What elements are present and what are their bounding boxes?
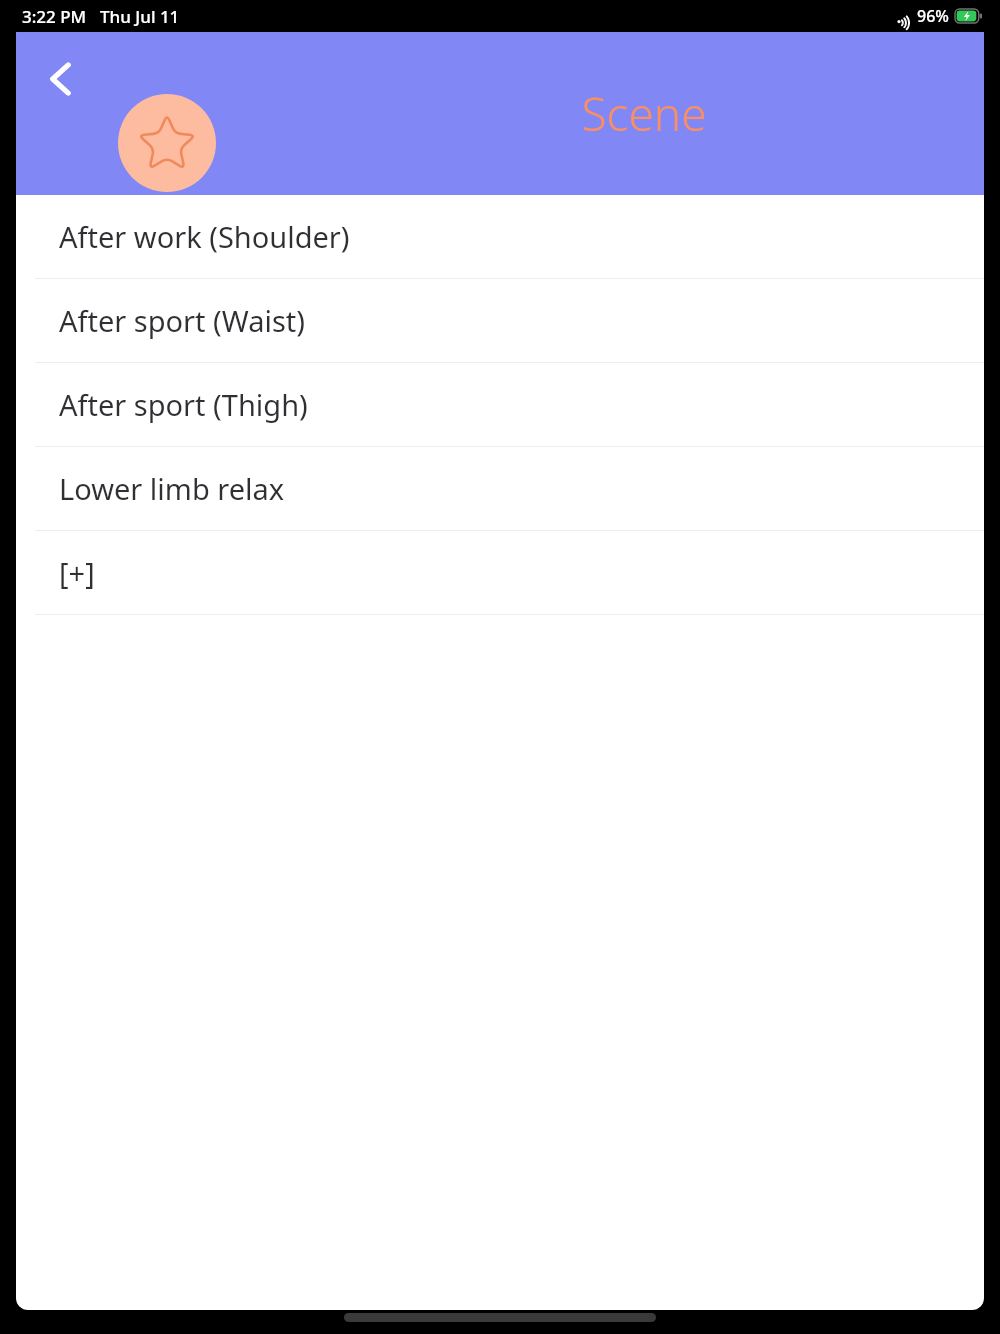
- button[interactable]: Scene icon: [118, 94, 216, 192]
- button[interactable]: After work (Shoulder): [16, 195, 984, 278]
- staticText: After sport (Thigh): [59, 385, 308, 424]
- staticText: After sport (Waist): [59, 301, 306, 340]
- button[interactable]: [+]: [16, 531, 984, 614]
- staticText: 96%: [917, 5, 949, 27]
- button[interactable]: After sport (Thigh): [16, 363, 984, 446]
- button[interactable]: Back: [36, 54, 86, 104]
- staticText: 3:22 PM: [22, 5, 87, 28]
- staticText: After work (Shoulder): [59, 217, 350, 256]
- staticText: [+]: [59, 553, 95, 592]
- staticText: Lower limb relax: [59, 469, 285, 508]
- button[interactable]: Lower limb relax: [16, 447, 984, 530]
- staticText: Scene: [564, 82, 724, 145]
- button[interactable]: After sport (Waist): [16, 279, 984, 362]
- staticText: Thu Jul 11: [100, 5, 180, 28]
